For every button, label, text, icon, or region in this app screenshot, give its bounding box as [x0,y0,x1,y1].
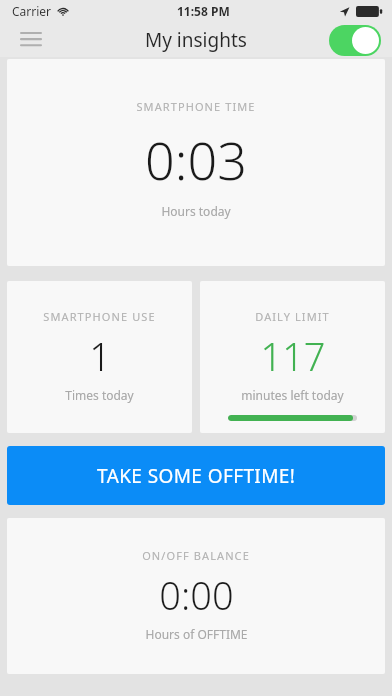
button[interactable]: DAILY LIMIT [200,281,385,433]
button[interactable]: SMARTPHONE TIME [7,59,385,266]
staticText: Hours of OFFTIME [145,626,248,642]
staticText: SMARTPHONE TIME [136,99,256,114]
button[interactable]: ON/OFF BALANCE [7,518,385,674]
button[interactable]: SMARTPHONE USE [7,281,192,433]
staticText: My insights [145,27,247,53]
staticText: 117 [260,330,326,382]
staticText: ON/OFF BALANCE [142,548,250,563]
staticText: 11:58 PM [177,3,230,19]
button[interactable]: TAKE SOME OFFTIME! [7,446,385,505]
staticText: 1 [89,330,111,382]
staticText: DAILY LIMIT [255,309,330,324]
staticText: 0:00 [159,569,234,621]
staticText: Hours today [161,203,231,219]
button[interactable]: Menu [10,25,52,55]
staticText: SMARTPHONE USE [43,309,156,324]
staticText: Carrier [12,3,52,19]
button[interactable]: Toggle OFFTIME [326,24,384,56]
staticText: TAKE SOME OFFTIME! [97,463,296,489]
staticText: Times today [65,387,134,403]
staticText: minutes left today [241,387,344,403]
staticText: 0:03 [145,124,247,195]
